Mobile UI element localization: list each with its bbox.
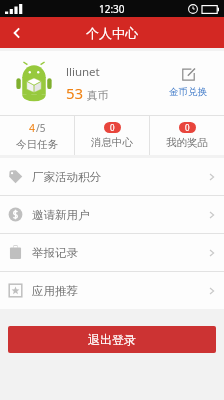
staticText: 消息中心	[91, 136, 133, 149]
staticText: 举报记录	[32, 246, 208, 260]
button[interactable]: 应用推荐	[0, 272, 224, 309]
staticText: 应用推荐	[32, 284, 208, 298]
button[interactable]: Avatar	[10, 59, 58, 107]
staticText: /5	[36, 121, 46, 135]
staticText: 邀请新用户	[32, 208, 208, 222]
button[interactable]: 邀请新用户	[0, 196, 224, 233]
button[interactable]: 举报记录	[0, 234, 224, 271]
staticText: 我的奖品	[166, 136, 208, 149]
staticText: 个人中心	[86, 25, 138, 41]
button[interactable]: 金币兑换	[162, 68, 214, 98]
button[interactable]: 4	[0, 116, 74, 155]
button[interactable]: Back	[0, 17, 34, 48]
staticText: 金币兑换	[169, 86, 207, 98]
staticText: 真币	[87, 89, 108, 102]
staticText: lliunet	[66, 64, 100, 80]
staticText: 退出登录	[88, 332, 136, 347]
staticText: 12:30	[99, 2, 125, 16]
staticText: 4	[29, 121, 36, 135]
button[interactable]: 0	[75, 116, 149, 155]
staticText: 53	[66, 83, 84, 103]
button[interactable]: 厂家活动积分	[0, 158, 224, 195]
staticText: 厂家活动积分	[32, 170, 208, 184]
button[interactable]: 退出登录	[8, 326, 216, 353]
staticText: 0	[185, 122, 190, 133]
staticText: 今日任务	[16, 138, 58, 151]
button[interactable]: 0	[150, 116, 224, 155]
staticText: 0	[110, 122, 115, 133]
